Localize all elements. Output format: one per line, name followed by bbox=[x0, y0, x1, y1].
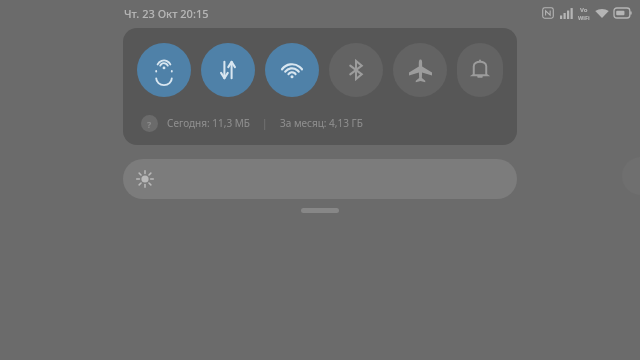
button[interactable]: Hotspot bbox=[137, 43, 191, 97]
button[interactable]: Ringer bbox=[457, 43, 503, 97]
button[interactable]: ? bbox=[123, 105, 517, 141]
staticText: Сегодня: 11,3 МБ bbox=[167, 116, 250, 130]
staticText: За месяц: 4,13 ГБ bbox=[280, 116, 363, 130]
staticText: ? bbox=[147, 118, 152, 130]
staticText: Vo bbox=[580, 6, 588, 14]
button[interactable]: Expand quick settings bbox=[301, 208, 339, 213]
button[interactable]: Mobile data bbox=[201, 43, 255, 97]
button[interactable]: Wi-Fi bbox=[265, 43, 319, 97]
staticText: | bbox=[262, 116, 268, 130]
button[interactable]: Airplane mode bbox=[393, 43, 447, 97]
staticText: Чт. 23 Окт 20:15 bbox=[124, 6, 209, 21]
staticText: WiFi bbox=[578, 14, 590, 21]
button[interactable]: Bluetooth bbox=[329, 43, 383, 97]
button[interactable]: Brightness bbox=[123, 159, 517, 199]
